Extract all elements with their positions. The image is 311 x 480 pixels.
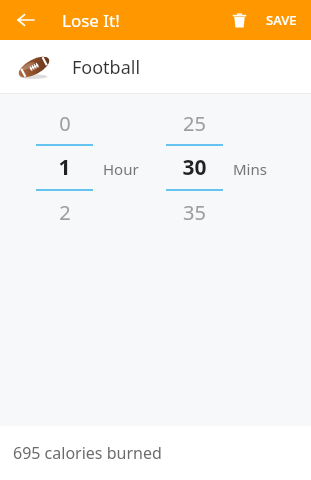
staticText: 30 [182,153,207,182]
staticText: Football [72,55,141,80]
staticText: Lose It! [62,9,120,32]
button[interactable]: Back [10,4,42,36]
staticText: Hour [103,159,139,179]
staticText: 695 calories burned [13,442,162,464]
staticText: Mins [233,159,267,179]
staticText: 1 [58,153,71,182]
staticText: SAVE [266,11,297,29]
button[interactable]: SAVE [260,5,303,35]
button[interactable]: 25 [166,107,223,228]
staticText: 2 [59,199,71,226]
staticText: 35 [183,199,206,226]
staticText: 0 [59,110,71,137]
button[interactable]: 0 [36,107,93,228]
staticText: 25 [183,110,206,137]
button[interactable]: Delete [224,5,254,35]
